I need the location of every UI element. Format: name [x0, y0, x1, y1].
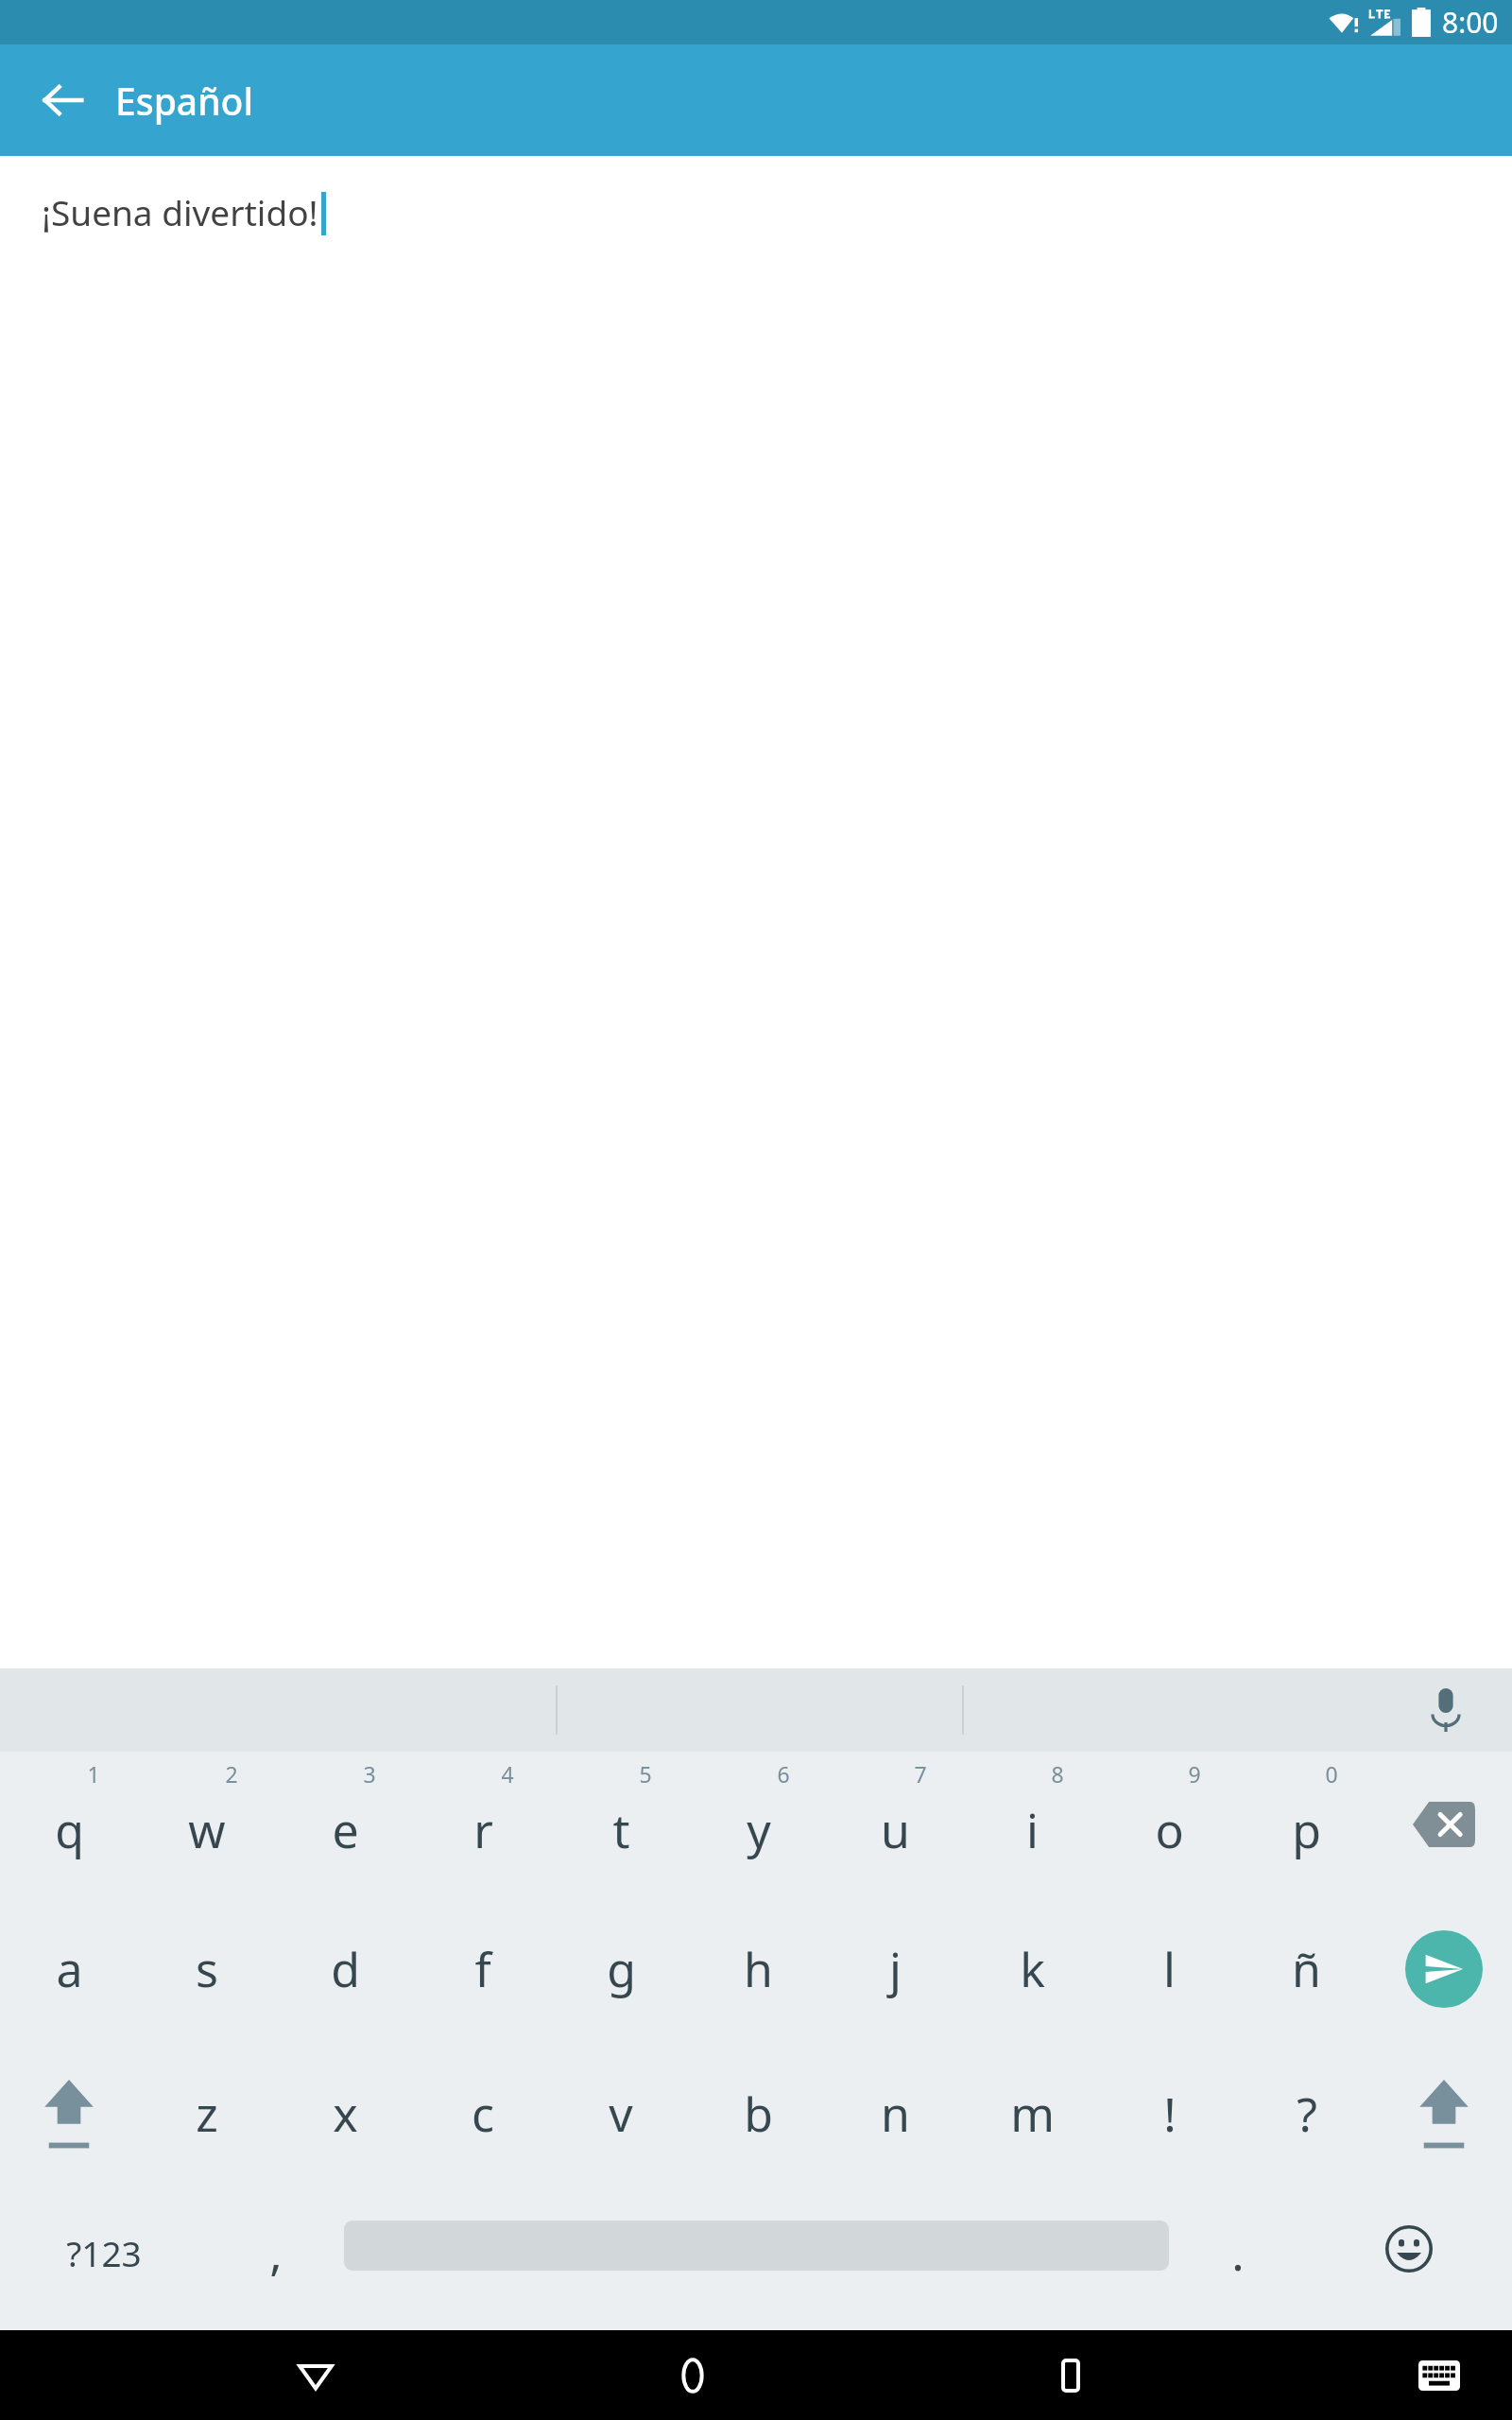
staticText: 7: [914, 1759, 927, 1789]
staticText: .: [1231, 2221, 1245, 2285]
button[interactable]: d: [276, 1896, 414, 2041]
staticText: ,: [269, 2221, 283, 2285]
staticText: h: [744, 1937, 773, 2001]
button[interactable]: ?123: [0, 2186, 207, 2330]
staticText: c: [472, 2082, 494, 2146]
button[interactable]: 2: [138, 1752, 276, 1896]
button[interactable]: !: [1101, 2041, 1238, 2186]
button[interactable]: z: [138, 2041, 276, 2186]
button[interactable]: ñ: [1238, 1896, 1375, 2041]
staticText: t: [612, 1798, 630, 1862]
button[interactable]: 0: [1238, 1752, 1375, 1896]
button[interactable]: x: [276, 2041, 414, 2186]
button[interactable]: .: [1169, 2186, 1306, 2330]
staticText: 1: [87, 1759, 100, 1789]
button[interactable]: s: [138, 1896, 276, 2041]
staticText: 0: [1325, 1759, 1338, 1789]
staticText: 9: [1188, 1759, 1201, 1789]
button[interactable]: ?: [1238, 2041, 1375, 2186]
button[interactable]: b: [690, 2041, 827, 2186]
staticText: s: [196, 1937, 218, 2001]
staticText: 2: [225, 1759, 238, 1789]
staticText: u: [881, 1798, 910, 1862]
staticText: 8:00: [1442, 3, 1499, 42]
button[interactable]: Back: [21, 58, 106, 143]
button[interactable]: v: [552, 2041, 690, 2186]
button[interactable]: Recents: [1009, 2330, 1132, 2420]
staticText: m: [1010, 2082, 1055, 2146]
staticText: 5: [639, 1759, 652, 1789]
staticText: w: [188, 1798, 226, 1862]
button[interactable]: l: [1101, 1896, 1238, 2041]
button[interactable]: 1: [0, 1752, 138, 1896]
staticText: g: [607, 1937, 636, 2001]
staticText: p: [1292, 1798, 1321, 1862]
staticText: v: [609, 2082, 633, 2146]
button[interactable]: 7: [827, 1752, 964, 1896]
staticText: Español: [115, 76, 253, 126]
button[interactable]: Send: [1375, 1896, 1512, 2041]
staticText: ?123: [66, 2229, 142, 2276]
staticText: ?: [1297, 2082, 1317, 2146]
staticText: ¡Suena divertido!: [42, 188, 318, 235]
staticText: j: [889, 1937, 902, 2001]
button[interactable]: 6: [690, 1752, 827, 1896]
button[interactable]: 3: [276, 1752, 414, 1896]
staticText: b: [744, 2082, 773, 2146]
staticText: !: [1163, 2082, 1177, 2146]
button[interactable]: Emoji: [1306, 2186, 1512, 2330]
button[interactable]: h: [690, 1896, 827, 2041]
button[interactable]: 8: [964, 1752, 1101, 1896]
staticText: q: [55, 1798, 84, 1862]
staticText: a: [56, 1937, 83, 2001]
staticText: e: [332, 1798, 359, 1862]
button[interactable]: g: [552, 1896, 690, 2041]
staticText: x: [333, 2082, 358, 2146]
button[interactable]: a: [0, 1896, 138, 2041]
button[interactable]: Shift: [0, 2041, 138, 2186]
button[interactable]: Backspace: [1375, 1752, 1512, 1896]
staticText: k: [1020, 1937, 1045, 2001]
staticText: f: [474, 1937, 491, 2001]
staticText: n: [881, 2082, 910, 2146]
staticText: 8: [1051, 1759, 1064, 1789]
staticText: i: [1026, 1798, 1039, 1862]
button[interactable]: f: [414, 1896, 552, 2041]
button[interactable]: c: [414, 2041, 552, 2186]
button[interactable]: Switch keyboard: [1387, 2330, 1491, 2420]
staticText: 3: [363, 1759, 376, 1789]
button[interactable]: Space: [344, 2186, 1169, 2330]
button[interactable]: k: [964, 1896, 1101, 2041]
staticText: d: [331, 1937, 360, 2001]
staticText: z: [196, 2082, 218, 2146]
staticText: y: [747, 1798, 771, 1862]
button[interactable]: 4: [414, 1752, 552, 1896]
staticText: o: [1155, 1798, 1184, 1862]
button[interactable]: n: [827, 2041, 964, 2186]
button[interactable]: 9: [1101, 1752, 1238, 1896]
button[interactable]: Voice input: [1408, 1672, 1484, 1748]
staticText: l: [1163, 1937, 1176, 2001]
staticText: ñ: [1292, 1937, 1321, 2001]
button[interactable]: Home: [631, 2330, 754, 2420]
button[interactable]: Back: [254, 2330, 377, 2420]
button[interactable]: j: [827, 1896, 964, 2041]
button[interactable]: Shift: [1375, 2041, 1512, 2186]
button[interactable]: 5: [552, 1752, 690, 1896]
staticText: r: [473, 1798, 493, 1862]
staticText: 4: [501, 1759, 514, 1789]
button[interactable]: m: [964, 2041, 1101, 2186]
button[interactable]: ,: [207, 2186, 344, 2330]
staticText: 6: [777, 1759, 790, 1789]
